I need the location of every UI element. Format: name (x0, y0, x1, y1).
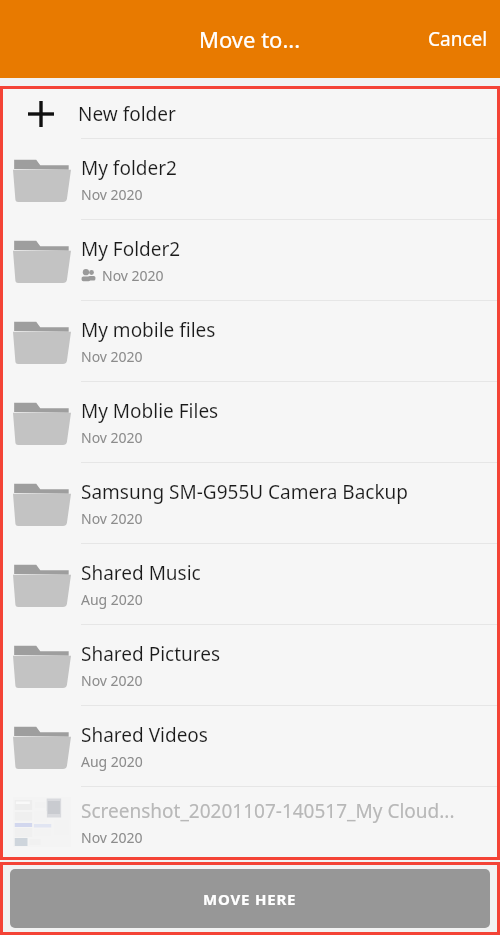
button[interactable]: New folder (3, 89, 497, 138)
staticText: Cancel (428, 26, 488, 52)
staticText: Nov 2020 (81, 185, 143, 204)
staticText: My Folder2 (81, 236, 181, 262)
staticText: Nov 2020 (81, 347, 143, 366)
button[interactable]: My folder2 (3, 139, 497, 219)
button[interactable]: Shared Pictures (3, 625, 497, 705)
staticText: MOVE HERE (203, 889, 297, 909)
button[interactable]: Cancel (416, 16, 500, 62)
staticText: Move to... (199, 24, 301, 54)
button[interactable]: My Moblie Files (3, 382, 497, 462)
staticText: Aug 2020 (81, 752, 143, 771)
button[interactable]: Screenshot_20201107-140517_My Cloud... (3, 787, 497, 857)
button[interactable]: MOVE HERE (10, 869, 490, 928)
staticText: Aug 2020 (81, 590, 143, 609)
button[interactable]: My Folder2 (3, 220, 497, 300)
staticText: Shared Videos (81, 722, 208, 748)
staticText: Nov 2020 (102, 266, 164, 285)
staticText: My folder2 (81, 155, 177, 181)
staticText: Nov 2020 (81, 671, 143, 690)
staticText: My Moblie Files (81, 398, 219, 424)
staticText: Samsung SM-G955U Camera Backup (81, 479, 409, 505)
staticText: Shared Music (81, 560, 201, 586)
staticText: Nov 2020 (81, 828, 143, 847)
staticText: Shared Pictures (81, 641, 221, 667)
button[interactable]: Samsung SM-G955U Camera Backup (3, 463, 497, 543)
staticText: New folder (78, 101, 176, 127)
button[interactable]: My mobile files (3, 301, 497, 381)
button[interactable]: Shared Music (3, 544, 497, 624)
staticText: Screenshot_20201107-140517_My Cloud... (81, 798, 455, 824)
other: New folder (28, 101, 54, 127)
staticText: Nov 2020 (81, 509, 143, 528)
staticText: Nov 2020 (81, 428, 143, 447)
staticText: My mobile files (81, 317, 216, 343)
button[interactable]: Shared Videos (3, 706, 497, 786)
